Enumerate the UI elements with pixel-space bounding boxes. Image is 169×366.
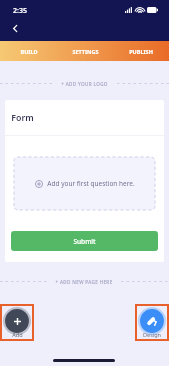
staticText: Form	[11, 112, 34, 124]
button[interactable]: SETTINGS	[57, 41, 113, 61]
staticText: + ADD YOUR LOGO	[61, 81, 108, 87]
staticText: Add	[12, 331, 23, 338]
button[interactable]: Add	[1, 305, 33, 340]
staticText: Add your first question here.	[47, 179, 135, 188]
button[interactable]: Add your first question here.	[14, 157, 155, 210]
button[interactable]: Back	[3, 17, 25, 39]
button[interactable]: + ADD YOUR LOGO	[0, 80, 169, 87]
button[interactable]: Submit	[11, 231, 158, 251]
staticText: BUILD	[20, 48, 38, 55]
staticText: + ADD NEW PAGE HERE	[55, 279, 113, 285]
staticText: Design	[143, 331, 161, 338]
button[interactable]: Design	[136, 305, 168, 340]
staticText: SETTINGS	[72, 48, 99, 55]
button[interactable]: PUBLISH	[113, 41, 169, 61]
button[interactable]: BUILD	[0, 41, 57, 61]
staticText: 2:35	[13, 6, 27, 16]
staticText: PUBLISH	[129, 48, 153, 55]
staticText: Submit	[73, 237, 96, 246]
button[interactable]: + ADD NEW PAGE HERE	[0, 278, 169, 285]
